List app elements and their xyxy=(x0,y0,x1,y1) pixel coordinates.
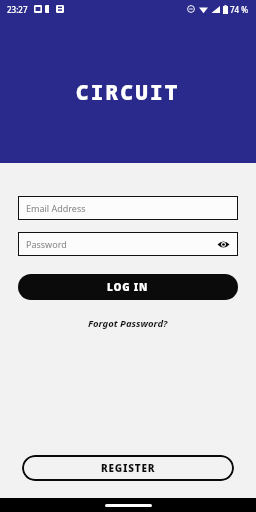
staticText: 23:27 xyxy=(7,4,28,15)
button[interactable]: Password xyxy=(18,232,238,256)
staticText: Email Address xyxy=(26,202,230,214)
button[interactable]: Email Address xyxy=(18,196,238,220)
button[interactable]: Forgot Password? xyxy=(82,314,174,333)
staticText: LOG IN xyxy=(107,280,149,294)
button[interactable]: REGISTER xyxy=(22,455,234,481)
staticText: 74 % xyxy=(230,4,249,15)
button[interactable]: Show password xyxy=(216,237,230,251)
staticText: Forgot Password? xyxy=(88,317,168,330)
staticText: Password xyxy=(26,238,216,250)
staticText: REGISTER xyxy=(101,461,156,475)
button[interactable]: LOG IN xyxy=(18,274,238,300)
staticText: CIRCUIT xyxy=(76,78,180,107)
